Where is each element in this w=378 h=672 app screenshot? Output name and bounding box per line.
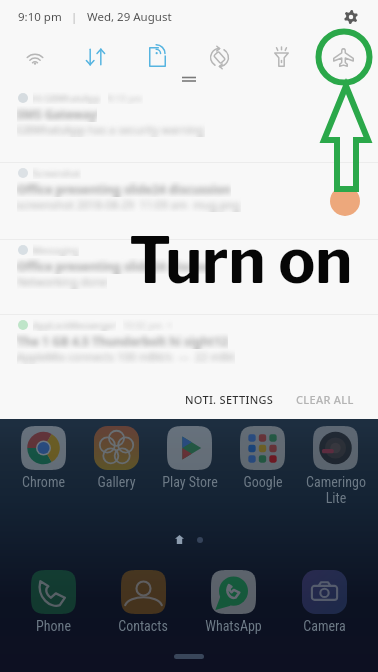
staticText: Screenshot: [33, 167, 81, 179]
staticText: 10:02 pm ^: [123, 319, 173, 331]
staticText: Cameringo Lite: [306, 474, 366, 506]
button[interactable]: Contacts: [98, 570, 188, 634]
staticText: CLEAR ALL: [296, 392, 354, 407]
staticText: Phone: [36, 618, 71, 634]
button[interactable]: Google: [226, 426, 299, 490]
button[interactable]: Screenshot: [0, 163, 378, 239]
button[interactable]: Chrome: [6, 426, 80, 490]
staticText: Google: [243, 474, 283, 490]
staticText: Office presenting slide24 discussion: [17, 181, 231, 197]
staticText: 9:10 pm: [18, 9, 62, 25]
button[interactable]: CLEAR ALL: [290, 386, 360, 413]
staticText: Camera: [303, 618, 346, 634]
staticText: Office presenting slide24 discuss: [17, 258, 213, 274]
button[interactable]: Camera: [279, 570, 370, 634]
staticText: 9:10 pm: [108, 92, 143, 104]
button[interactable]: Settings: [338, 4, 364, 30]
button[interactable]: Gallery: [80, 426, 153, 490]
staticText: Play Store: [162, 474, 218, 490]
button[interactable]: Play Store: [153, 426, 226, 490]
staticText: |: [62, 9, 87, 25]
button[interactable]: Airplane mode: [312, 34, 374, 80]
staticText: screenshot 2018-08-29 11:09 am mug.png: [17, 197, 241, 212]
staticText: AppleMix connects 100 mBit/s — 22 mBit: [17, 349, 235, 364]
staticText: Hi GBWhatsApp: [33, 92, 101, 104]
button[interactable]: Cameringo Lite: [299, 426, 372, 506]
button[interactable]: NOTI. SETTINGS: [179, 386, 280, 413]
button[interactable]: Smart View: [126, 34, 188, 80]
staticText: Contacts: [118, 618, 168, 634]
staticText: Messaging: [33, 244, 79, 256]
button[interactable]: Hi GBWhatsApp: [0, 88, 378, 162]
staticText: Networking done: [17, 274, 107, 289]
staticText: Gallery: [97, 474, 136, 490]
button[interactable]: Mobile data: [65, 34, 126, 80]
button[interactable]: Flashlight: [250, 34, 312, 80]
staticText: AppLockMessenger: [33, 319, 116, 331]
staticText: GBWhatsApp has a security warning: [17, 122, 205, 137]
staticText: WhatsApp: [205, 618, 262, 634]
staticText: NOTI. SETTINGS: [185, 392, 274, 407]
button[interactable]: Wi-Fi: [4, 34, 65, 80]
staticText: Chrome: [22, 474, 65, 490]
button[interactable]: Messaging: [0, 240, 378, 314]
button[interactable]: Phone: [8, 570, 98, 634]
button[interactable]: Auto rotate: [188, 34, 250, 80]
staticText: Turn on: [129, 223, 353, 298]
staticText: SMS Gateway: [17, 106, 97, 122]
staticText: Wed, 29 August: [87, 9, 172, 25]
button[interactable]: WhatsApp: [188, 570, 279, 634]
button[interactable]: AppLockMessenger: [0, 315, 378, 389]
staticText: The 1 GB 4.5 Thunderbolt hi sight12: [17, 333, 228, 349]
